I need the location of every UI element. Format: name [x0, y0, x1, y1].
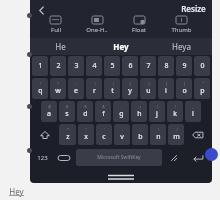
staticText: 5 — [110, 61, 115, 71]
button[interactable]: 7 — [140, 56, 156, 76]
staticText: ) — [175, 105, 176, 109]
staticText: 9 — [182, 61, 187, 71]
staticText: ] — [184, 82, 185, 86]
staticText: [ — [166, 82, 167, 86]
staticText: n — [156, 132, 161, 142]
staticText: # — [66, 105, 68, 109]
button[interactable]: Shift — [32, 124, 57, 145]
button[interactable]: ~ — [68, 78, 84, 99]
staticText: i — [165, 86, 167, 96]
staticText: g — [119, 109, 124, 119]
staticText: 7 — [146, 61, 151, 71]
staticText: ' — [104, 128, 105, 132]
button[interactable]: 1 — [32, 56, 48, 76]
staticText: He — [55, 41, 66, 52]
staticText: } — [148, 82, 150, 86]
staticText: { — [129, 82, 131, 86]
staticText: h — [137, 109, 142, 119]
button[interactable]: Backspace — [186, 124, 210, 145]
button[interactable]: 2 — [50, 56, 66, 76]
button[interactable]: - — [113, 101, 129, 122]
button[interactable]: One handed — [82, 14, 112, 36]
staticText: * — [67, 128, 69, 132]
button[interactable]: ! — [32, 78, 48, 99]
staticText: t — [111, 86, 114, 96]
staticText: d — [83, 109, 88, 119]
button[interactable]: Drag handle — [30, 169, 212, 183]
staticText: " — [85, 128, 87, 132]
staticText: 2 — [56, 61, 61, 71]
button[interactable]: ( — [149, 101, 165, 122]
staticText: Float — [132, 26, 146, 34]
staticText: 4 — [92, 61, 97, 71]
button[interactable]: } — [140, 78, 156, 99]
button[interactable]: " — [194, 78, 210, 99]
button[interactable]: ; — [132, 124, 148, 145]
button[interactable]: 6 — [122, 56, 138, 76]
staticText: _ — [192, 105, 194, 109]
staticText: ! — [40, 82, 41, 86]
button[interactable]: 5 — [104, 56, 120, 76]
button[interactable]: ) — [167, 101, 183, 122]
staticText: s — [65, 109, 69, 119]
staticText: One-H.. — [86, 26, 108, 34]
button[interactable]: Resize — [181, 3, 206, 14]
button[interactable]: Back — [34, 3, 48, 17]
button[interactable]: @ — [41, 101, 57, 122]
staticText: b — [138, 132, 143, 142]
staticText: m — [173, 132, 180, 142]
staticText: | — [112, 82, 114, 86]
staticText: c — [102, 132, 106, 142]
staticText: z — [66, 132, 70, 142]
button[interactable]: Hey — [90, 38, 151, 55]
button[interactable]: | — [104, 78, 120, 99]
button[interactable]: Thumb keyboard — [167, 14, 196, 36]
staticText: & — [102, 105, 105, 109]
staticText: @ — [48, 105, 51, 109]
staticText: 0 — [200, 61, 205, 71]
button[interactable]: 8 — [158, 56, 174, 76]
staticText: / — [176, 128, 178, 132]
button[interactable]: [ — [158, 78, 174, 99]
staticText: l — [192, 109, 194, 119]
button[interactable]: 4 — [86, 56, 102, 76]
button[interactable]: He — [30, 38, 90, 55]
button[interactable]: + — [131, 101, 147, 122]
button[interactable]: ' — [96, 124, 112, 145]
button[interactable]: Heya — [151, 38, 212, 55]
button[interactable]: Floating keyboard — [128, 14, 150, 36]
staticText: - — [121, 105, 122, 109]
button[interactable]: ? — [50, 78, 66, 99]
staticText: v — [120, 132, 124, 142]
button[interactable]: 3 — [68, 56, 84, 76]
staticText: Hey — [9, 186, 24, 197]
staticText: o — [182, 86, 187, 96]
button[interactable]: { — [122, 78, 138, 99]
staticText: 6 — [128, 61, 133, 71]
button[interactable]: 9 — [176, 56, 192, 76]
button[interactable]: Emoji — [55, 147, 73, 168]
button[interactable]: # — [59, 101, 75, 122]
button[interactable]: : — [114, 124, 130, 145]
button[interactable]: Resize handle — [205, 148, 218, 161]
staticText: " — [202, 82, 204, 86]
staticText: q — [38, 86, 43, 96]
button[interactable]: Space — [76, 149, 162, 166]
staticText: % — [84, 105, 87, 109]
button[interactable]: \ — [86, 78, 102, 99]
button[interactable]: Voice input — [165, 147, 183, 168]
button[interactable]: ! — [150, 124, 166, 145]
button[interactable]: Full keyboard — [46, 14, 65, 36]
button[interactable]: / — [168, 124, 184, 145]
button[interactable]: ] — [176, 78, 192, 99]
button[interactable]: " — [78, 124, 94, 145]
button[interactable]: 0 — [194, 56, 210, 76]
button[interactable]: % — [77, 101, 93, 122]
staticText: \ — [94, 82, 96, 86]
button[interactable]: * — [59, 124, 76, 145]
button[interactable]: _ — [185, 101, 201, 122]
button[interactable]: 123 — [31, 146, 54, 169]
button[interactable]: Enter — [185, 147, 210, 168]
staticText: y — [128, 86, 132, 96]
button[interactable]: & — [95, 101, 111, 122]
